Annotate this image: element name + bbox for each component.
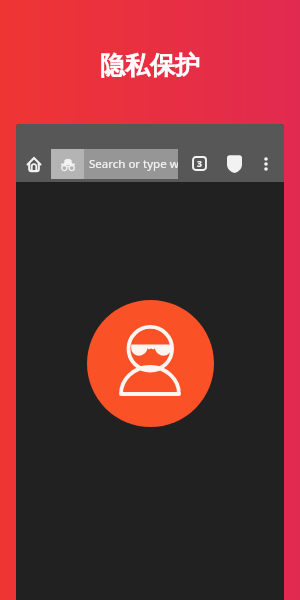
staticText: Search or type w <box>89 156 178 172</box>
button[interactable]: Privacy shield <box>223 152 246 175</box>
button[interactable]: Tabs <box>188 152 211 175</box>
button[interactable]: More options <box>255 153 277 175</box>
button[interactable]: Home <box>23 153 45 175</box>
button[interactable]: Search or type w <box>51 149 178 179</box>
staticText: 隐私保护 <box>0 50 300 81</box>
staticText: 3 <box>197 158 202 170</box>
